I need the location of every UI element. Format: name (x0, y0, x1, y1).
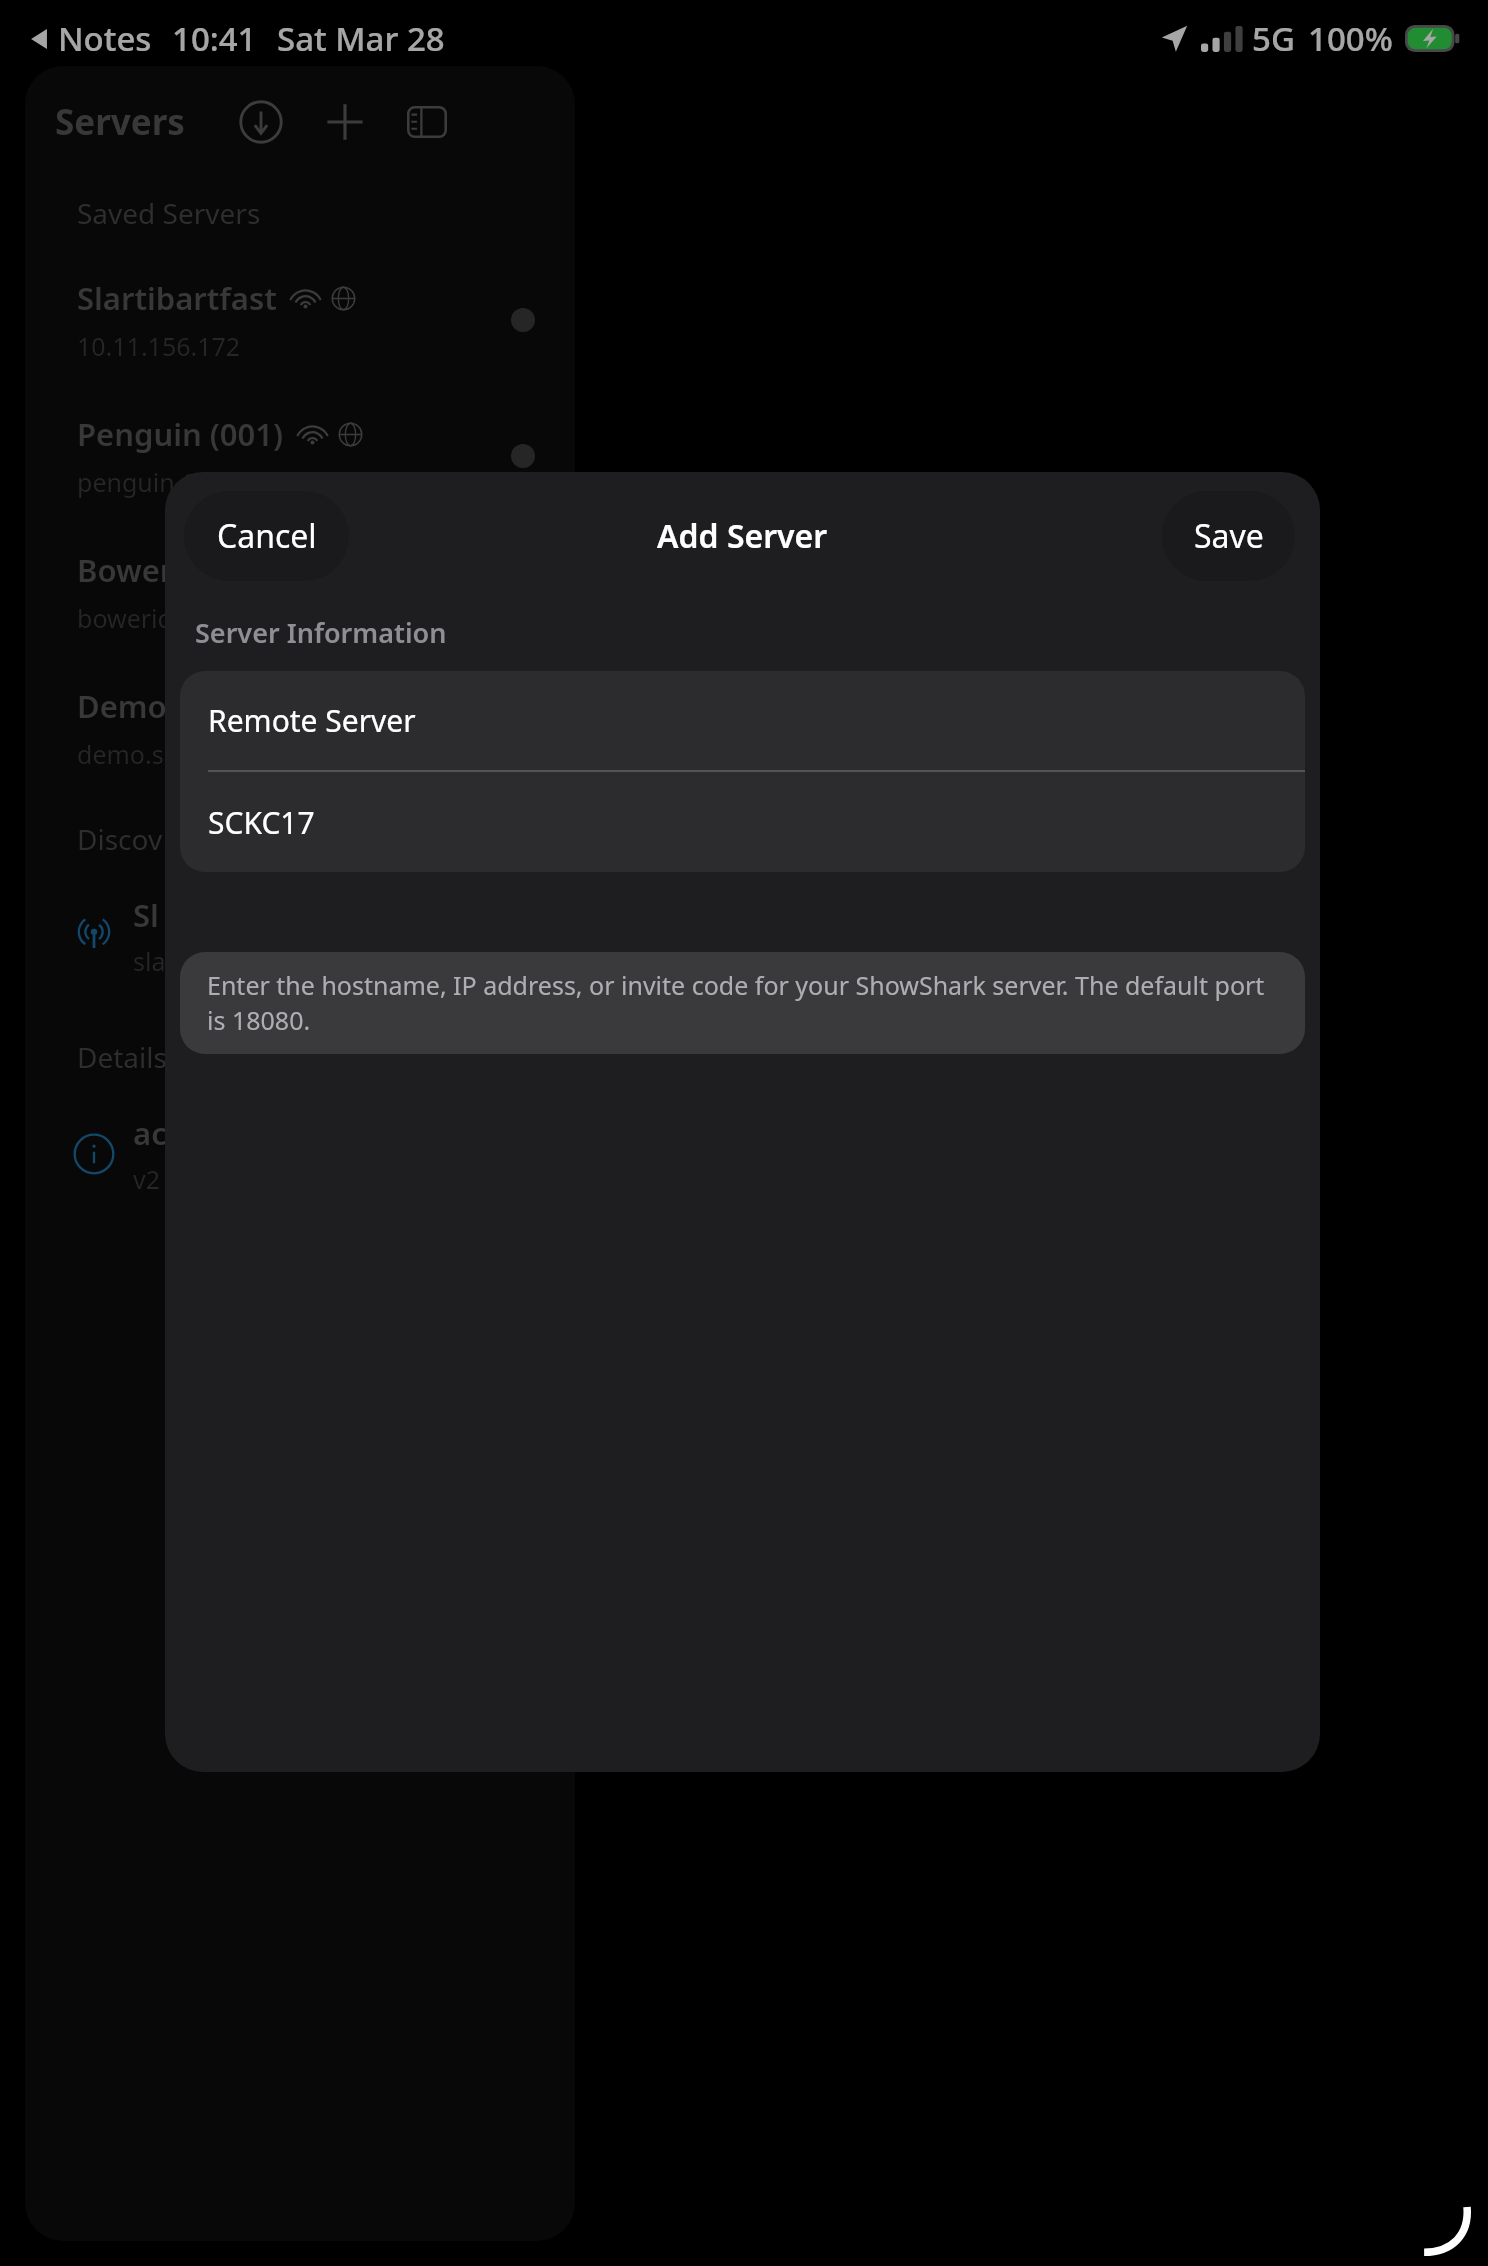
staticText: Save (1194, 514, 1264, 558)
staticText: Bower (77, 549, 174, 591)
button[interactable]: Bower (25, 540, 575, 644)
staticText: Saved Servers (77, 194, 261, 232)
button[interactable]: Demo (25, 676, 575, 780)
staticText: ac (133, 1112, 167, 1154)
button[interactable]: Cancel (184, 491, 349, 581)
staticText: Enter the hostname, IP address, or invit… (207, 968, 1278, 1038)
staticText: Penguin (001) (77, 413, 284, 455)
button[interactable]: SCKC17 (180, 772, 1305, 872)
staticText: Remote Server (208, 700, 416, 741)
staticText: SCKC17 (208, 802, 315, 843)
staticText: penguin-001.local (77, 465, 287, 499)
staticText: boweric (77, 601, 170, 635)
staticText: demo.sl (77, 737, 171, 771)
staticText: Server Information (195, 614, 447, 651)
button[interactable]: Remote Server (180, 671, 1305, 770)
staticText: Sat Mar 28 (277, 16, 445, 61)
button[interactable]: ac (25, 1104, 575, 1204)
staticText: Cancel (217, 514, 317, 558)
button[interactable]: Toggle sidebar (405, 100, 449, 144)
staticText: Notes (58, 16, 152, 61)
staticText: 10.11.156.172 (77, 329, 241, 363)
staticText: Sl (133, 894, 159, 936)
staticText: 100% (1308, 16, 1393, 61)
staticText: sla (133, 944, 166, 978)
staticText: Details (77, 1038, 167, 1076)
button[interactable]: Slartibartfast (25, 268, 575, 372)
button[interactable]: Add server (321, 98, 369, 146)
staticText: Servers (55, 98, 185, 146)
staticText: Add Server (657, 514, 828, 558)
button[interactable]: Penguin (001) (25, 404, 575, 508)
staticText: Discov (77, 820, 163, 858)
button[interactable]: Download (237, 98, 285, 146)
staticText: 10:41 (172, 16, 257, 61)
button[interactable]: Sl (25, 886, 575, 986)
staticText: 5G (1252, 16, 1295, 61)
button[interactable]: Save (1162, 491, 1295, 581)
staticText: Slartibartfast (77, 277, 277, 319)
staticText: Demo (77, 685, 167, 727)
staticText: v2 (133, 1162, 161, 1196)
